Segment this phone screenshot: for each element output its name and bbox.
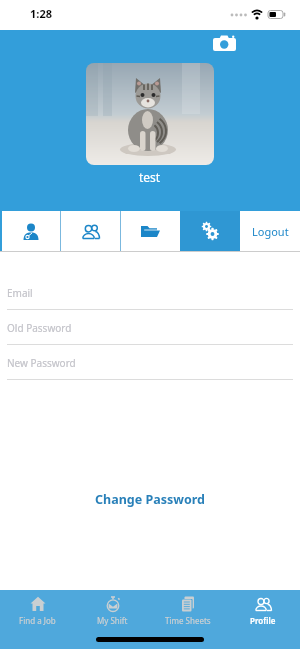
button[interactable]: Logout	[240, 211, 300, 251]
button[interactable]	[61, 211, 120, 251]
staticText: Profile	[250, 615, 276, 626]
staticText: Old Password	[7, 321, 72, 335]
button[interactable]	[180, 211, 240, 251]
staticText: My Shift	[97, 615, 128, 626]
button[interactable]	[209, 32, 239, 54]
button[interactable]: Find a Job	[0, 596, 75, 636]
button[interactable]	[2, 211, 60, 251]
staticText: 1:28	[30, 6, 52, 21]
staticText: test	[139, 169, 161, 185]
staticText: Change Password	[95, 491, 205, 508]
button[interactable]: Profile	[225, 596, 300, 636]
button[interactable]: Time Sheets	[150, 596, 225, 636]
button[interactable]: Change Password	[0, 491, 300, 508]
staticText: New Password	[7, 356, 76, 370]
button[interactable]: Old Password	[0, 321, 300, 345]
button[interactable]	[121, 211, 180, 251]
staticText: Find a Job	[19, 615, 56, 626]
button[interactable]: My Shift	[75, 596, 150, 636]
staticText: Logout	[252, 224, 289, 239]
button[interactable]: New Password	[0, 356, 300, 380]
button[interactable]: Email	[0, 286, 300, 310]
staticText: Email	[7, 286, 33, 300]
button[interactable]	[86, 63, 214, 165]
staticText: Time Sheets	[165, 615, 211, 626]
